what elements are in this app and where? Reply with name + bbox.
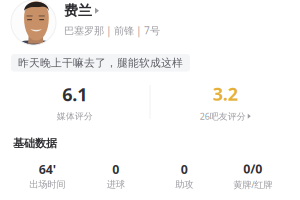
- staticText: 媒体评分: [57, 111, 93, 122]
- staticText: 0: [112, 161, 119, 178]
- staticText: 昨天晚上干嘛去了，腿能软成这样: [18, 56, 183, 70]
- staticText: 6.1: [62, 82, 87, 107]
- staticText: 0: [181, 161, 188, 178]
- button[interactable]: 3.2: [150, 82, 300, 122]
- staticText: 费兰: [64, 2, 92, 19]
- staticText: 64': [39, 161, 56, 178]
- staticText: 3.2: [213, 82, 238, 106]
- staticText: 基础数据: [13, 136, 57, 150]
- staticText: 0/0: [243, 160, 262, 177]
- staticText: 出场时间: [29, 179, 65, 190]
- staticText: 助攻: [175, 179, 193, 190]
- button[interactable]: 6.1: [0, 82, 149, 122]
- staticText: 黄牌/红牌: [233, 178, 272, 191]
- staticText: 进球: [107, 179, 125, 190]
- staticText: 巴塞罗那 | 前锋 | 7号: [64, 23, 160, 37]
- staticText: 26吧友评分: [200, 110, 246, 122]
- button[interactable]: 费兰: [0, 0, 300, 44]
